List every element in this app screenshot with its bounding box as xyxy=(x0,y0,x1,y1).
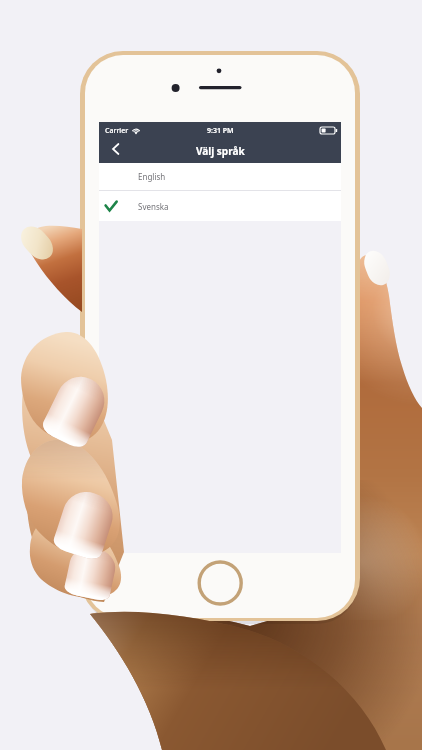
staticText: Svenska xyxy=(138,201,169,212)
staticText: 9:31 PM xyxy=(207,126,234,136)
staticText: English xyxy=(138,171,166,182)
button[interactable]: Svenska xyxy=(99,191,341,221)
button[interactable]: Back xyxy=(104,139,126,163)
staticText: Carrier xyxy=(105,126,129,136)
button[interactable]: English xyxy=(99,163,341,190)
staticText: Välj språk xyxy=(196,144,245,158)
